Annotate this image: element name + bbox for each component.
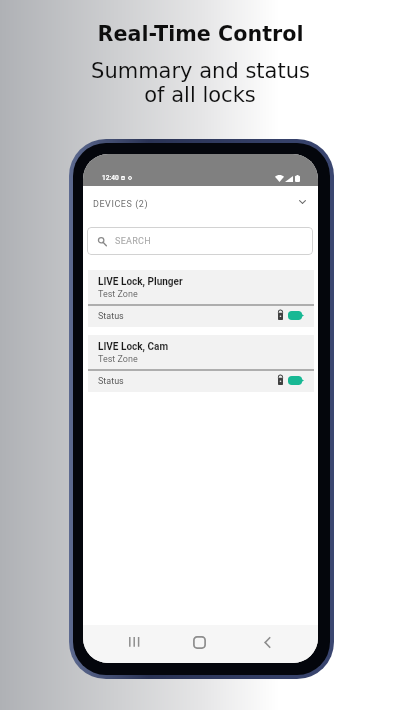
staticText: Test Zone — [98, 354, 138, 365]
staticText: 12:40 — [102, 174, 119, 182]
staticText: Status — [98, 311, 124, 322]
button[interactable]: Home — [193, 636, 206, 649]
button[interactable]: Recents — [128, 637, 139, 648]
staticText: LIVE Lock, Plunger — [98, 276, 183, 288]
staticText: Status — [98, 376, 124, 387]
button[interactable]: LIVE Lock, Cam — [88, 335, 314, 392]
button[interactable]: DEVICES (2) — [83, 186, 318, 222]
staticText: of all locks — [144, 83, 256, 107]
staticText: DEVICES (2) — [93, 199, 149, 210]
staticText: Test Zone — [98, 289, 138, 300]
button[interactable]: LIVE Lock, Plunger — [88, 270, 314, 327]
button[interactable]: SEARCH — [87, 227, 313, 255]
button[interactable]: Back — [264, 637, 271, 648]
staticText: Summary and status — [91, 59, 310, 83]
staticText: LIVE Lock, Cam — [98, 341, 169, 353]
staticText: SEARCH — [115, 236, 151, 247]
staticText: Real-Time Control — [97, 22, 304, 46]
